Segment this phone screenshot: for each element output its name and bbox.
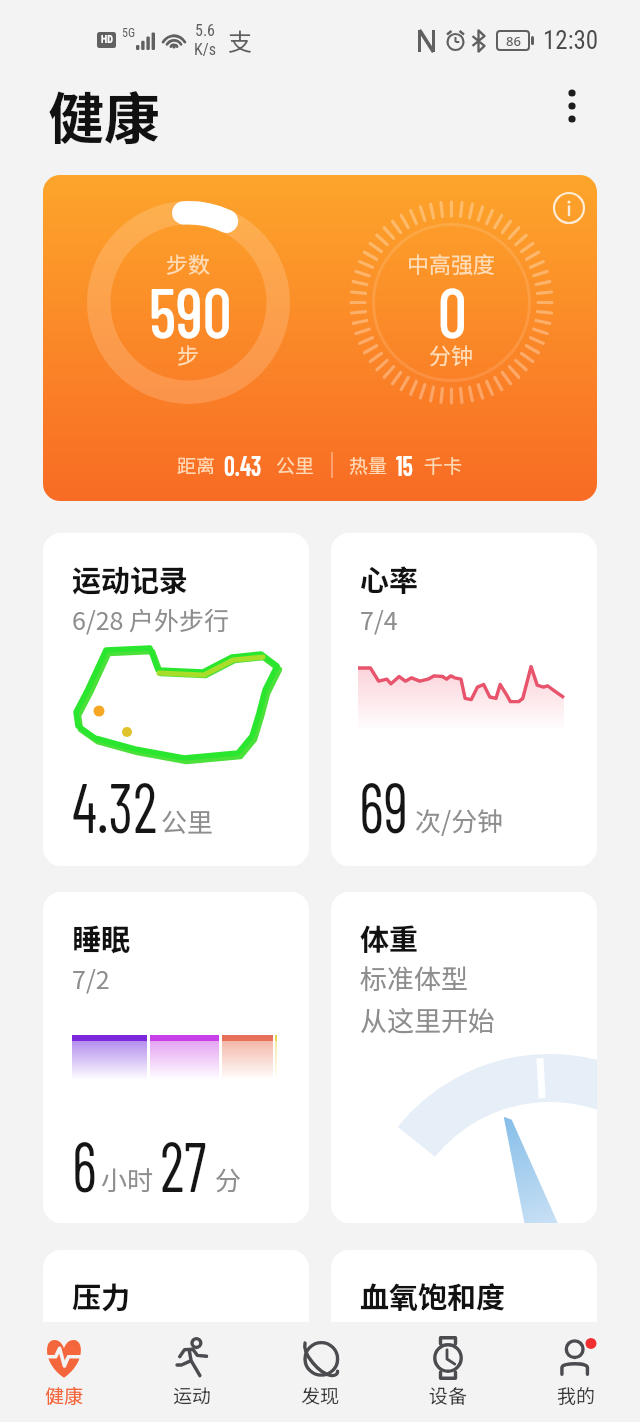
- staticText: 15: [396, 448, 413, 482]
- staticText: 5.6: [195, 21, 216, 40]
- staticText: K/s: [194, 40, 216, 59]
- button[interactable]: 发现: [256, 1336, 384, 1409]
- staticText: 距离: [177, 451, 216, 479]
- staticText: 86: [506, 32, 521, 50]
- staticText: 心率: [360, 557, 419, 599]
- button[interactable]: 压力: [43, 1250, 309, 1390]
- button[interactable]: 设备: [384, 1336, 512, 1409]
- staticText: 分钟: [429, 338, 474, 370]
- staticText: 压力: [72, 1274, 131, 1316]
- button[interactable]: 步数: [43, 175, 597, 501]
- staticText: 发现: [301, 1381, 340, 1409]
- button[interactable]: 心率: [331, 533, 597, 866]
- staticText: 6: [72, 1122, 97, 1206]
- staticText: 7/2: [72, 960, 110, 996]
- staticText: 从这里开始: [360, 1000, 495, 1039]
- staticText: 分: [215, 1160, 242, 1198]
- staticText: 12:30: [543, 26, 599, 55]
- staticText: 睡眠: [72, 916, 131, 958]
- staticText: 我的: [557, 1381, 596, 1409]
- staticText: 健康: [45, 1381, 84, 1409]
- staticText: 7/4: [360, 601, 398, 637]
- staticText: 次/分钟: [415, 801, 504, 839]
- staticText: 健康: [48, 74, 160, 155]
- staticText: 标准体型: [360, 958, 468, 997]
- staticText: 支: [228, 23, 252, 58]
- staticText: HD: [101, 34, 113, 46]
- staticText: 小时: [101, 1160, 154, 1198]
- staticText: 体重: [360, 916, 419, 958]
- staticText: 6/28 户外步行: [72, 601, 230, 637]
- staticText: 运动: [173, 1381, 212, 1409]
- staticText: 热量: [349, 451, 388, 479]
- button[interactable]: 血氧饱和度: [331, 1250, 597, 1390]
- staticText: 0: [438, 268, 467, 352]
- staticText: 0.43: [224, 448, 262, 482]
- button[interactable]: 我的: [512, 1336, 640, 1409]
- staticText: 血氧饱和度: [360, 1274, 506, 1316]
- button[interactable]: 睡眠: [43, 892, 309, 1223]
- button[interactable]: More options: [548, 78, 596, 134]
- staticText: 5G: [122, 26, 136, 40]
- staticText: 中高强度: [407, 247, 496, 279]
- staticText: 运动记录: [72, 557, 189, 599]
- button[interactable]: 健康: [0, 1336, 128, 1409]
- staticText: 步数: [166, 247, 211, 279]
- staticText: 4.32: [72, 763, 158, 847]
- staticText: 公里: [161, 802, 214, 840]
- button[interactable]: 体重: [331, 892, 597, 1223]
- staticText: 设备: [429, 1381, 468, 1409]
- staticText: 69: [359, 763, 408, 847]
- staticText: 27: [160, 1122, 206, 1206]
- staticText: 590: [149, 268, 232, 352]
- button[interactable]: 运动记录: [43, 533, 309, 866]
- staticText: 步: [177, 338, 200, 370]
- button[interactable]: 运动: [128, 1336, 256, 1409]
- staticText: 千卡: [424, 451, 463, 479]
- button[interactable]: Info: [545, 184, 593, 232]
- staticText: 公里: [276, 451, 315, 479]
